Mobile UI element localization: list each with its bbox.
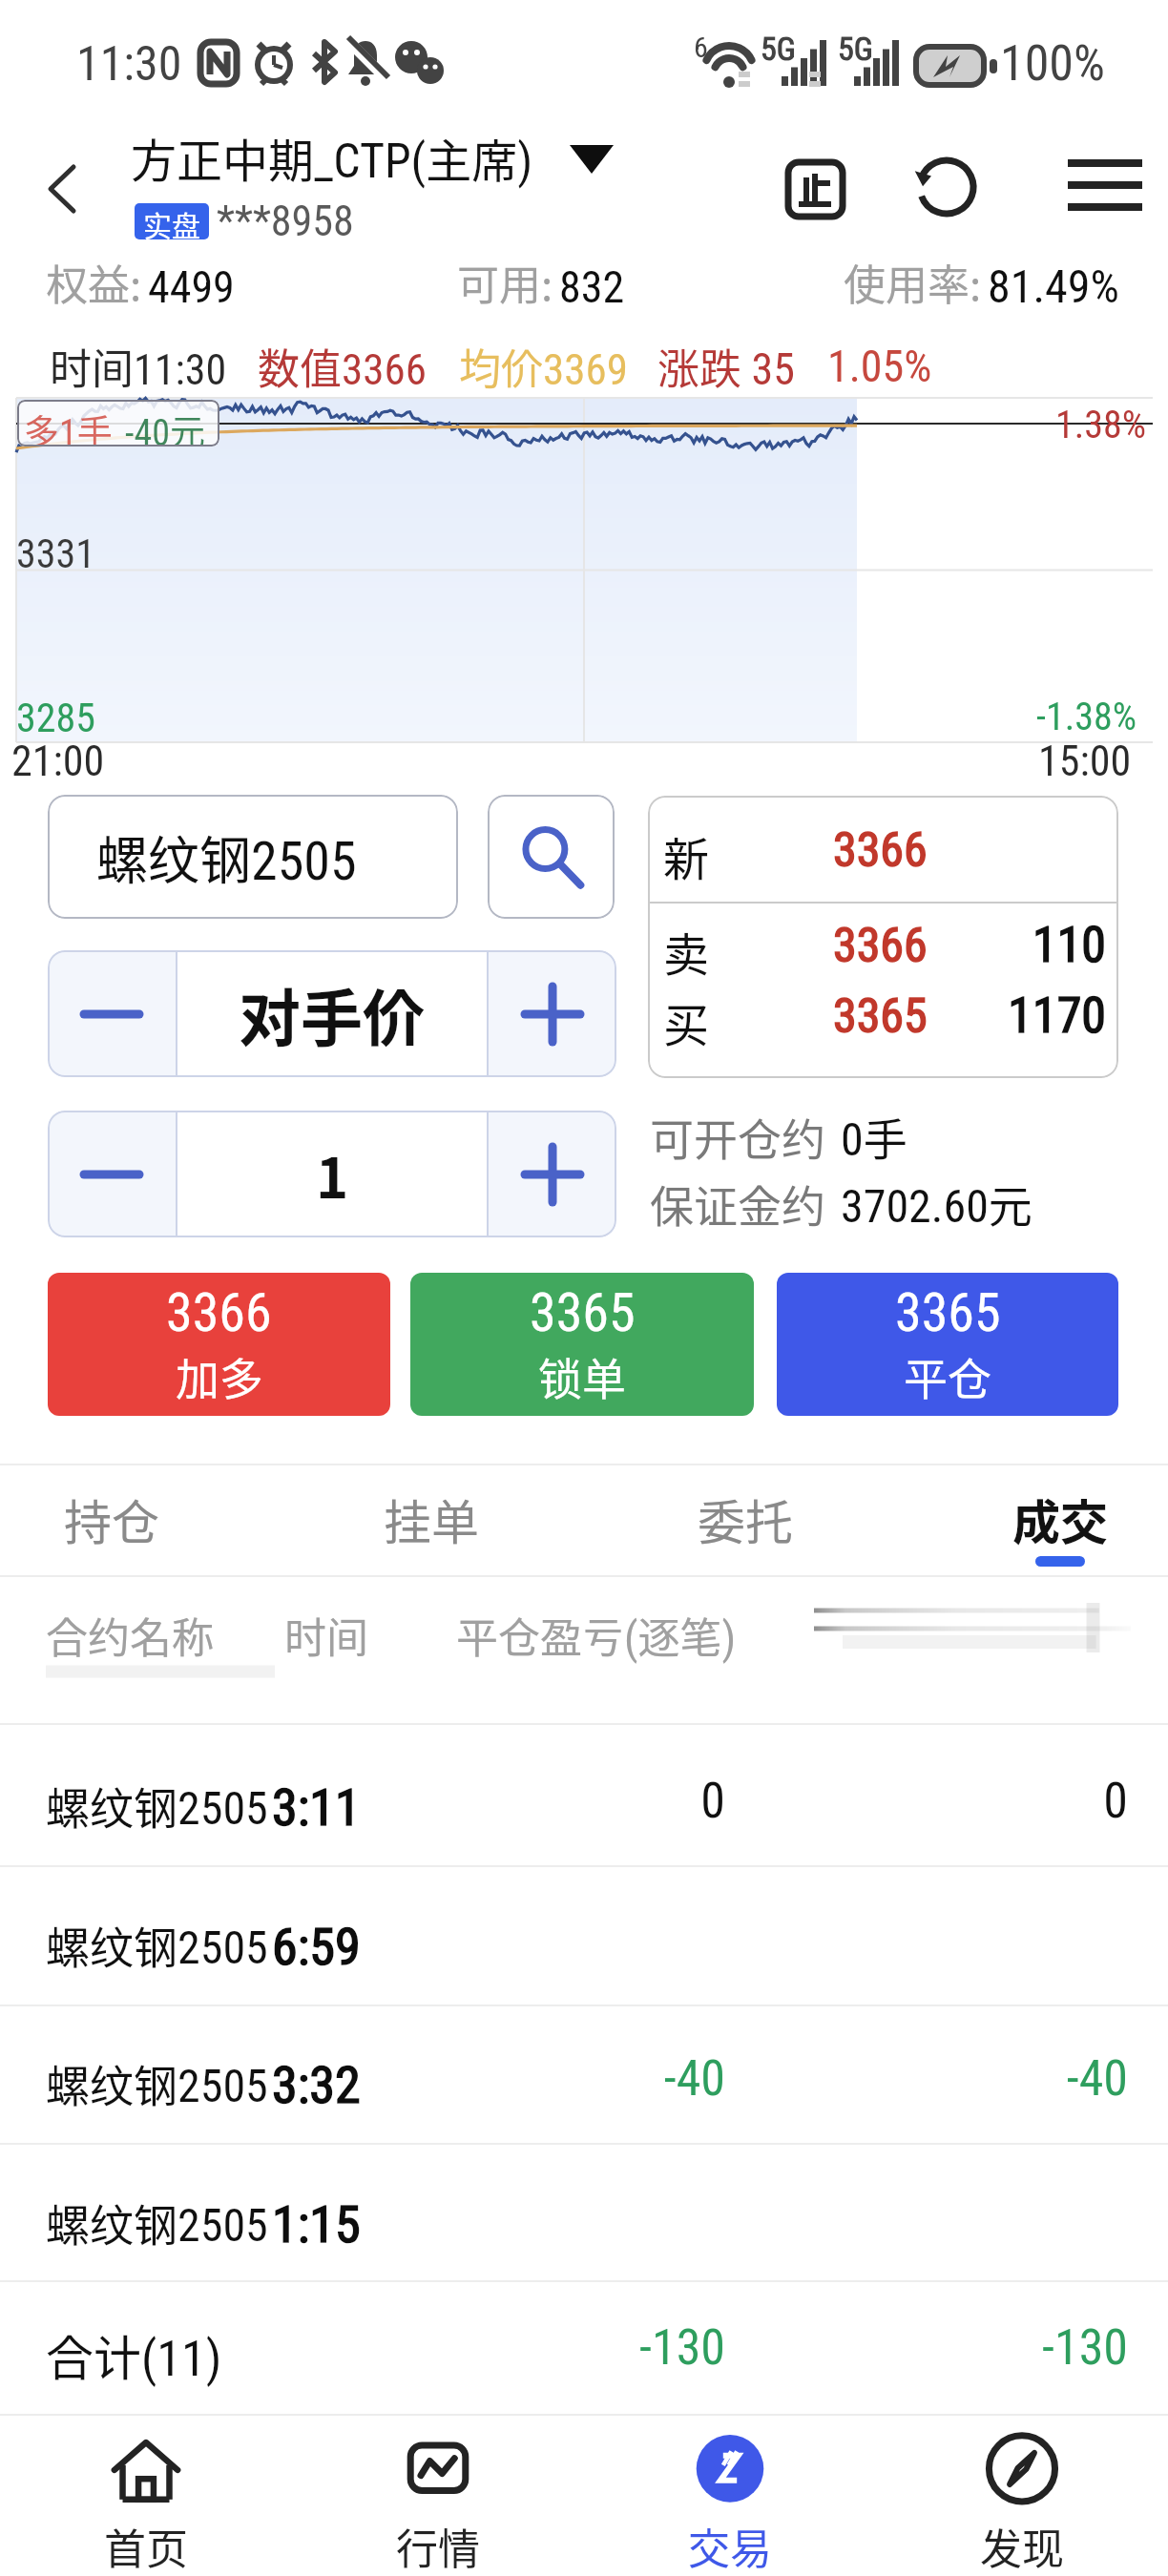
staticText: 保证金约 [650,1172,825,1236]
staticText: 100% [1000,34,1105,93]
button[interactable]: 首页 [0,2414,292,2576]
staticText: 110 [934,916,1106,974]
staticText: 832 [559,261,625,313]
staticText: 5G [838,30,873,68]
staticText: 0 [515,1772,725,1830]
staticText: -40 [515,2049,725,2108]
staticText: -40 [918,2049,1128,2108]
staticText: 锁单 [538,1344,626,1408]
button[interactable]: 螺纹钢2505 [0,2147,1168,2285]
staticText: 3366 [166,1281,272,1344]
button[interactable]: 3365 [410,1273,754,1416]
staticText: 螺纹钢2505 [46,2051,268,2115]
staticText: 3:32 [272,2055,361,2115]
staticText: 行情 [396,2516,480,2576]
staticText: 平仓 [904,1344,991,1408]
staticText: 时间 [284,1605,368,1666]
staticText: ***8958 [217,197,354,246]
staticText: 螺纹钢2505 [96,820,357,894]
staticText: 发现 [980,2516,1064,2576]
staticText: 3366 [833,918,928,974]
button[interactable]: 螺纹钢2505 [0,2007,1168,2146]
button[interactable]: 发现 [876,2414,1168,2576]
staticText: 81.49% [988,260,1119,313]
button[interactable]: Increase [489,950,616,1077]
staticText: 6:59 [272,1917,361,1977]
button[interactable]: 交易 [584,2414,876,2576]
staticText: 4499 [148,261,235,313]
button[interactable]: Increase [489,1111,616,1237]
staticText: 15:00 [1038,737,1132,786]
button[interactable]: Decrease [48,950,176,1077]
staticText: 21:00 [11,737,105,786]
button[interactable]: 合计(11) [0,2282,1168,2414]
button[interactable]: Refresh [916,156,977,218]
staticText: 3366 [833,822,928,879]
staticText: 多1手 [24,405,113,447]
button[interactable]: 3365 [777,1273,1118,1416]
button[interactable]: 方正中期_CTP(主席) [131,124,614,246]
staticText: 3331 [16,530,95,577]
staticText: 首页 [104,2516,188,2576]
staticText: 11:30 [76,36,182,93]
staticText: 1.05% [827,341,932,392]
staticText: 实盘 [143,203,200,239]
staticText: 新 [663,822,710,889]
staticText: -130 [918,2318,1128,2377]
staticText: 1170 [934,987,1106,1045]
staticText: 均价3369 [459,336,628,397]
staticText: 权益: [46,252,142,313]
staticText: 3702.60元 [841,1172,1032,1236]
button[interactable]: 委托 [593,1465,898,1575]
staticText: -40元 [125,405,205,447]
staticText: 数值3366 [258,336,427,397]
button[interactable]: Menu [1044,124,1166,246]
staticText: 可开仓约 [650,1105,825,1169]
button[interactable]: 螺纹钢2505 [48,795,458,919]
staticText: 0 [918,1772,1128,1830]
button[interactable]: 螺纹钢2505 [0,1730,1168,1868]
staticText: 合约名称 [46,1605,214,1666]
button[interactable]: 3366 [48,1273,390,1416]
staticText: 5G [761,30,796,68]
button[interactable]: 1 [177,1111,487,1237]
staticText: 可用: [457,252,553,313]
button[interactable]: Stop trading [754,128,876,250]
staticText: 6 [694,31,708,64]
staticText: 螺纹钢2505 [46,2191,268,2254]
staticText: 3365 [833,988,928,1045]
button[interactable]: 成交 [907,1465,1168,1575]
staticText: 螺纹钢2505 [46,1913,268,1977]
button[interactable]: 螺纹钢2505 [0,1869,1168,2007]
staticText: 螺纹钢2505 [46,1774,268,1838]
staticText: 3365 [530,1281,636,1344]
button[interactable]: 持仓 [0,1465,255,1575]
staticText: 3365 [895,1281,1001,1344]
staticText: 对手价 [239,969,426,1059]
button[interactable]: Back [14,141,110,237]
button[interactable]: 行情 [292,2414,584,2576]
staticText: 合计(11) [46,2320,222,2389]
staticText: 涨跌 35 [657,336,795,397]
staticText: 1 [316,1134,349,1215]
staticText: 卖 [663,918,710,985]
staticText: 委托 [698,1485,793,1553]
staticText: 1:15 [272,2194,361,2254]
staticText: 买 [663,988,710,1055]
staticText: 1.38% [1055,403,1147,447]
button[interactable]: Decrease [48,1111,176,1237]
staticText: 时间11:30 [50,336,227,397]
staticText: 成交 [1012,1485,1108,1553]
button[interactable]: 对手价 [177,950,487,1077]
staticText: 3285 [16,695,95,741]
staticText: 交易 [688,2516,772,2576]
staticText: -1.38% [1036,695,1137,739]
staticText: 挂单 [384,1485,479,1553]
button[interactable]: Search contract [488,795,615,919]
button[interactable]: 挂单 [279,1465,584,1575]
staticText: 3:11 [272,1777,361,1838]
staticText: 持仓 [64,1485,159,1553]
staticText: 0手 [841,1105,907,1169]
staticText: -130 [515,2318,725,2377]
staticText: 方正中期_CTP(主席) [131,124,533,191]
